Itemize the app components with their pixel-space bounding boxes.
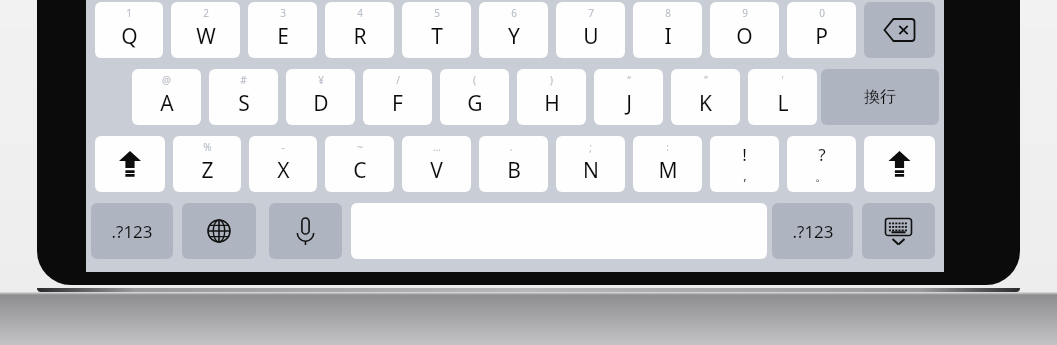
button[interactable]: 1 (95, 2, 163, 58)
button[interactable]: ” (671, 69, 740, 125)
staticText: J (626, 89, 632, 118)
staticText: 3 (280, 6, 286, 20)
staticText: ? (818, 143, 826, 166)
staticText: 2 (203, 6, 209, 20)
staticText: W (196, 22, 216, 51)
staticText: , (743, 166, 747, 184)
button[interactable]: # (209, 69, 278, 125)
button[interactable]: “ (594, 69, 663, 125)
staticText: - (281, 140, 285, 154)
staticText: ~ (357, 140, 363, 154)
button[interactable]: .?123 (772, 203, 853, 259)
staticText: G (467, 89, 483, 118)
staticText: E (277, 22, 289, 51)
staticText: ( (473, 73, 476, 87)
button[interactable]: ' (748, 69, 817, 125)
staticText: 8 (665, 6, 671, 20)
staticText: Z (201, 156, 214, 185)
staticText: .?123 (111, 220, 153, 243)
button[interactable]: 8 (633, 2, 702, 58)
button[interactable]: … (402, 136, 471, 192)
button[interactable]: 5 (402, 2, 471, 58)
staticText: 。 (815, 168, 828, 184)
staticText: N (583, 156, 599, 185)
staticText: Y (508, 22, 520, 51)
staticText: R (353, 22, 367, 51)
staticText: 9 (742, 6, 748, 20)
button[interactable]: @ (132, 69, 201, 125)
button[interactable]: Change language (182, 203, 256, 259)
staticText: U (583, 22, 599, 51)
staticText: # (240, 73, 247, 87)
staticText: 、 (509, 140, 519, 153)
staticText: / (396, 73, 400, 87)
staticText: 7 (588, 6, 594, 20)
staticText: A (160, 89, 174, 118)
staticText: 0 (819, 6, 825, 20)
staticText: 5 (434, 6, 440, 20)
staticText: T (431, 22, 443, 51)
staticText: 換行 (864, 87, 896, 107)
staticText: .?123 (792, 220, 834, 243)
staticText: L (777, 89, 789, 118)
staticText: I (664, 22, 672, 51)
button[interactable]: / (363, 69, 432, 125)
staticText: X (277, 156, 290, 185)
button[interactable]: 3 (248, 2, 317, 58)
button[interactable]: ) (517, 69, 586, 125)
button[interactable]: ; (556, 136, 625, 192)
staticText: D (313, 89, 329, 118)
staticText: @ (162, 73, 171, 87)
button[interactable]: ( (440, 69, 509, 125)
button[interactable]: 4 (325, 2, 394, 58)
staticText: S (238, 89, 250, 118)
button[interactable]: Delete (864, 2, 935, 58)
staticText: Q (121, 22, 138, 51)
staticText: ; (589, 140, 592, 154)
staticText: V (430, 156, 443, 185)
button[interactable]: : (633, 136, 702, 192)
staticText: % (203, 140, 212, 154)
staticText: K (699, 89, 712, 118)
button[interactable]: ? (787, 136, 856, 192)
staticText: ” (704, 73, 708, 87)
staticText: : (666, 140, 669, 154)
staticText: ' (781, 73, 784, 87)
button[interactable]: 0 (787, 2, 856, 58)
button[interactable]: 換行 (821, 69, 939, 125)
staticText: B (507, 156, 521, 185)
button[interactable]: Hide keyboard (862, 203, 935, 259)
button[interactable]: - (249, 136, 317, 192)
staticText: ) (550, 73, 553, 87)
staticText: O (736, 22, 753, 51)
staticText: F (392, 89, 403, 118)
button[interactable]: Shift (95, 136, 165, 192)
staticText: H (544, 89, 560, 118)
staticText: ! (742, 143, 747, 166)
button[interactable]: 2 (171, 2, 240, 58)
staticText: 4 (357, 6, 363, 20)
button[interactable]: Voice input (269, 203, 342, 259)
staticText: C (353, 156, 367, 185)
staticText: 6 (511, 6, 517, 20)
staticText: ¥ (318, 73, 324, 87)
button[interactable]: Shift (864, 136, 935, 192)
button[interactable]: 7 (556, 2, 625, 58)
button[interactable]: 9 (710, 2, 779, 58)
staticText: “ (627, 73, 631, 87)
staticText: … (433, 140, 441, 154)
button[interactable]: % (173, 136, 241, 192)
button[interactable]: .?123 (91, 203, 173, 259)
button[interactable]: ¥ (286, 69, 355, 125)
staticText: M (658, 156, 678, 185)
button[interactable]: 6 (479, 2, 548, 58)
staticText: P (815, 22, 828, 51)
button[interactable]: ! (710, 136, 779, 192)
staticText: 1 (126, 6, 132, 20)
button[interactable]: 、 (479, 136, 548, 192)
button[interactable]: ~ (325, 136, 394, 192)
